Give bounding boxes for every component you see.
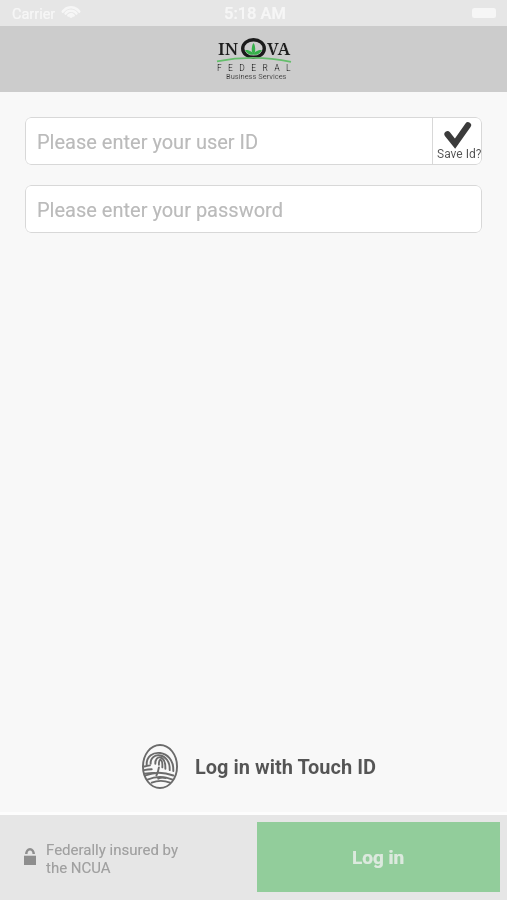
- staticText: Business Services: [226, 72, 287, 81]
- staticText: Federally insured by the NCUA: [46, 841, 179, 877]
- staticText: 5:18 AM: [224, 4, 286, 23]
- button[interactable]: Please enter your user ID: [25, 117, 482, 165]
- staticText: Log in: [352, 846, 405, 868]
- button[interactable]: Log in: [257, 822, 500, 892]
- staticText: VA: [267, 37, 291, 60]
- button[interactable]: Please enter your password: [25, 185, 482, 233]
- staticText: Log in with Touch ID: [195, 755, 377, 778]
- staticText: IN: [218, 37, 239, 60]
- button[interactable]: Federally insured by the NCUA: [24, 841, 179, 877]
- staticText: Save Id?: [437, 147, 482, 161]
- other: Log in with Touch ID: [142, 744, 178, 789]
- button[interactable]: Log in with Touch ID: [139, 741, 380, 792]
- staticText: Please enter your password: [37, 198, 283, 221]
- staticText: Please enter your user ID: [37, 130, 259, 153]
- staticText: FEDERAL: [217, 63, 298, 73]
- staticText: Carrier: [12, 6, 56, 23]
- button[interactable]: Save Id: [433, 117, 482, 165]
